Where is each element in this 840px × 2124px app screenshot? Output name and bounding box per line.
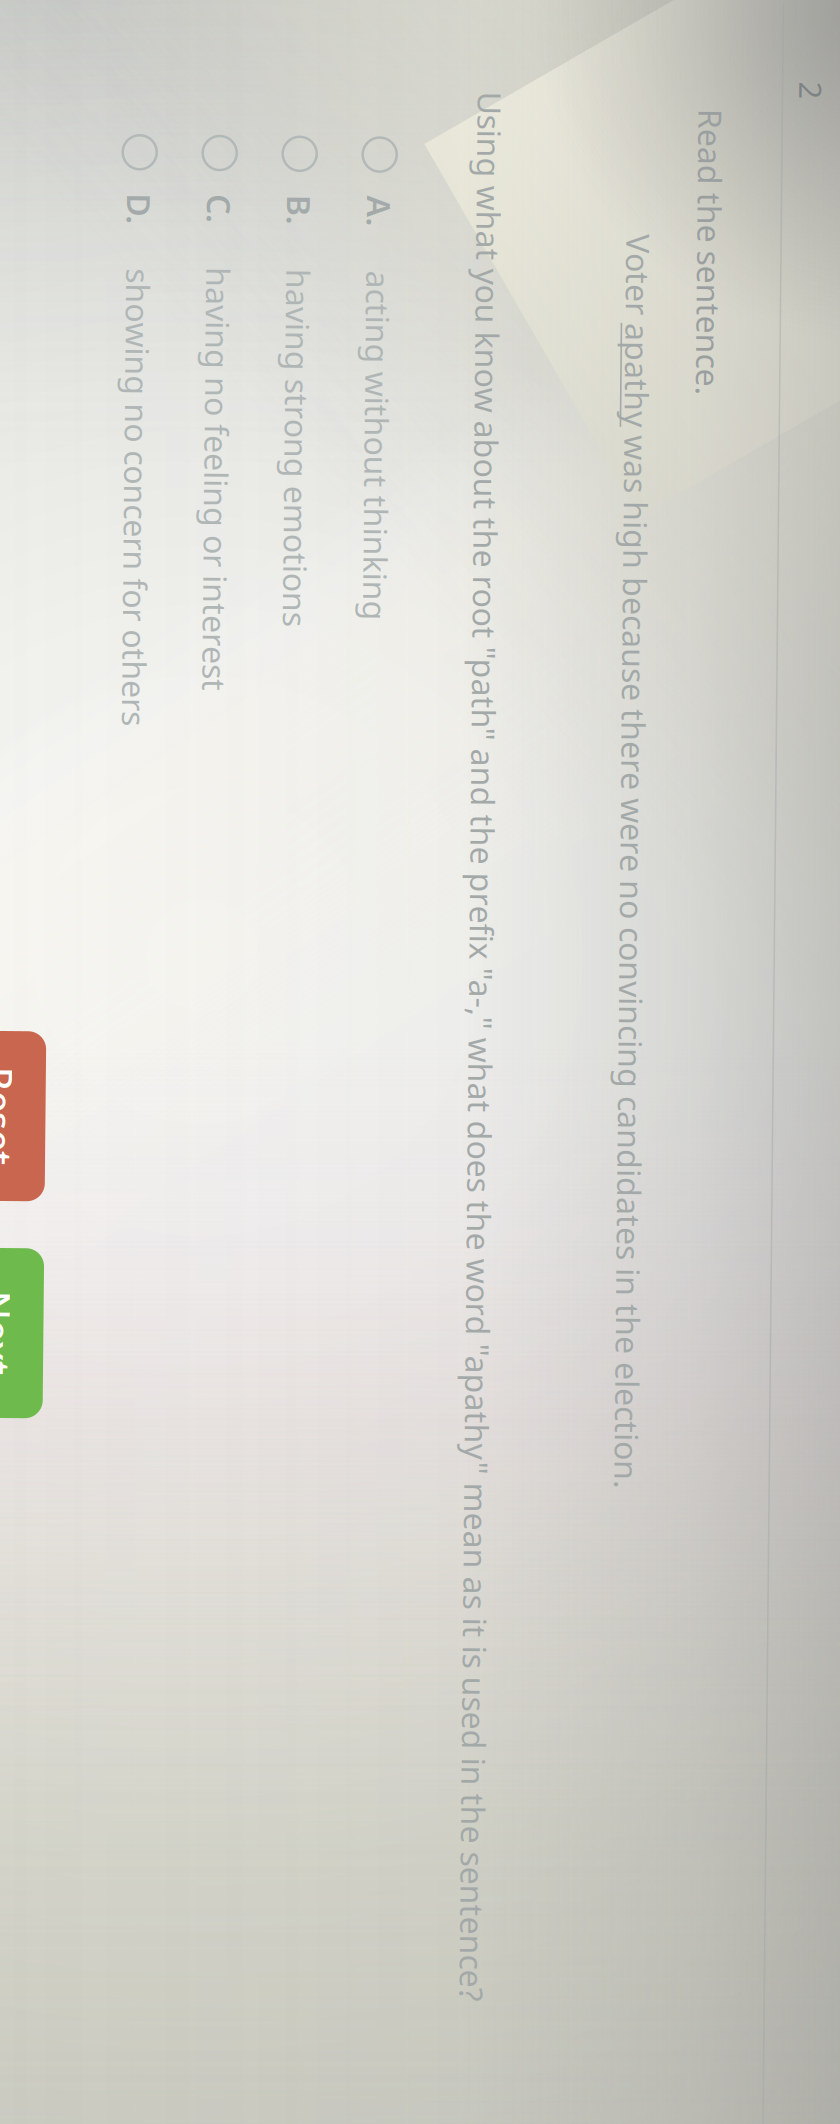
staticText: was high because there were no convincin…	[0, 830, 840, 872]
staticText: showing no concern for others	[0, 1330, 87, 1372]
button[interactable]: Next	[610, 1436, 780, 1528]
staticText: having no feeling or interest	[0, 1250, 51, 1292]
staticText: Using what you know about the root "path…	[0, 980, 840, 1022]
button[interactable]: Reset	[393, 1436, 563, 1528]
button[interactable]: B.	[0, 1171, 840, 1211]
button[interactable]: A.	[0, 1091, 840, 1131]
button[interactable]: D.	[0, 1331, 840, 1371]
button[interactable]: C.	[0, 1251, 840, 1291]
staticText: Reset	[429, 1457, 527, 1507]
